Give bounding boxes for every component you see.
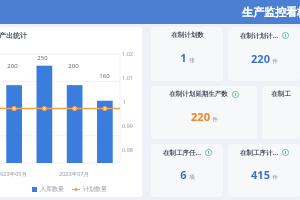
staticText: 220 bbox=[251, 51, 270, 66]
staticText: 在制计划数 bbox=[171, 31, 204, 39]
staticText: 1.01 bbox=[122, 74, 133, 81]
staticText: 在制计划延期生产数 bbox=[169, 90, 228, 98]
button[interactable]: 在制计划数 bbox=[151, 27, 223, 81]
staticText: 2023年07月 bbox=[59, 170, 89, 178]
staticText: 2023年05月 bbox=[0, 170, 27, 178]
button[interactable]: 在制计划延期生产数 bbox=[151, 86, 257, 139]
staticText: 在制工 bbox=[271, 90, 291, 98]
staticText: 计划数量 bbox=[83, 185, 107, 193]
staticText: 1 bbox=[122, 98, 126, 105]
staticText: 生产监控看板 bbox=[242, 5, 300, 19]
staticText: 在制工序计... bbox=[240, 148, 278, 157]
staticText: 0.99 bbox=[122, 122, 133, 129]
staticText: 在制计划计... bbox=[240, 31, 278, 40]
staticText: 1 bbox=[180, 50, 187, 65]
staticText: 160 bbox=[99, 72, 110, 80]
staticText: 1.02 bbox=[122, 50, 133, 57]
staticText: 200 bbox=[68, 62, 79, 70]
other: 信息 bbox=[205, 149, 212, 156]
other: 信息 bbox=[282, 32, 289, 39]
staticText: 张 bbox=[189, 57, 195, 64]
button[interactable]: 在制工序任... bbox=[151, 144, 223, 197]
staticText: 220 bbox=[191, 109, 210, 124]
staticText: 件 bbox=[272, 58, 278, 65]
staticText: 250 bbox=[37, 54, 48, 62]
staticText: 项 bbox=[189, 174, 195, 181]
button[interactable]: 在制工 bbox=[262, 86, 300, 139]
button[interactable]: 在制计划计... bbox=[228, 27, 300, 81]
other: 信息 bbox=[232, 91, 239, 98]
staticText: 产出统计 bbox=[0, 31, 27, 40]
other: 信息 bbox=[282, 149, 289, 156]
staticText: 在制工序任... bbox=[163, 148, 201, 157]
button[interactable]: 产出统计 bbox=[0, 27, 142, 197]
staticText: 入库数量 bbox=[40, 185, 64, 193]
staticText: 0.98 bbox=[122, 146, 133, 153]
staticText: 件 bbox=[212, 116, 218, 123]
staticText: 200 bbox=[7, 62, 18, 70]
staticText: 件 bbox=[272, 174, 278, 181]
staticText: 415 bbox=[251, 167, 270, 182]
button[interactable]: 在制工序计... bbox=[228, 144, 300, 197]
staticText: 6 bbox=[180, 167, 187, 182]
